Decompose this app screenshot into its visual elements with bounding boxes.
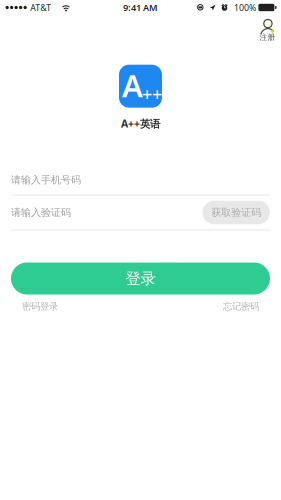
staticText: 密码登录 bbox=[22, 300, 58, 312]
staticText: 请输入验证码 bbox=[11, 206, 71, 219]
staticText: ++ bbox=[142, 82, 162, 106]
staticText: 注册 bbox=[259, 32, 275, 42]
button[interactable]: 忘记密码 bbox=[223, 300, 259, 312]
button[interactable]: 密码登录 bbox=[22, 300, 58, 312]
staticText: 100% bbox=[234, 1, 256, 13]
staticText: A bbox=[122, 64, 143, 106]
staticText: 9:41 AM bbox=[123, 1, 158, 14]
staticText: 获取验证码 bbox=[211, 206, 261, 219]
staticText: 忘记密码 bbox=[223, 300, 259, 312]
staticText: 请输入手机号码 bbox=[11, 173, 81, 186]
button[interactable]: 注册 bbox=[259, 15, 281, 42]
staticText: A++英语 bbox=[121, 116, 160, 130]
button[interactable]: 登录 bbox=[11, 262, 270, 294]
staticText: 登录 bbox=[125, 269, 155, 288]
button[interactable]: 获取验证码 bbox=[202, 201, 270, 224]
staticText: AT&T bbox=[30, 1, 51, 13]
